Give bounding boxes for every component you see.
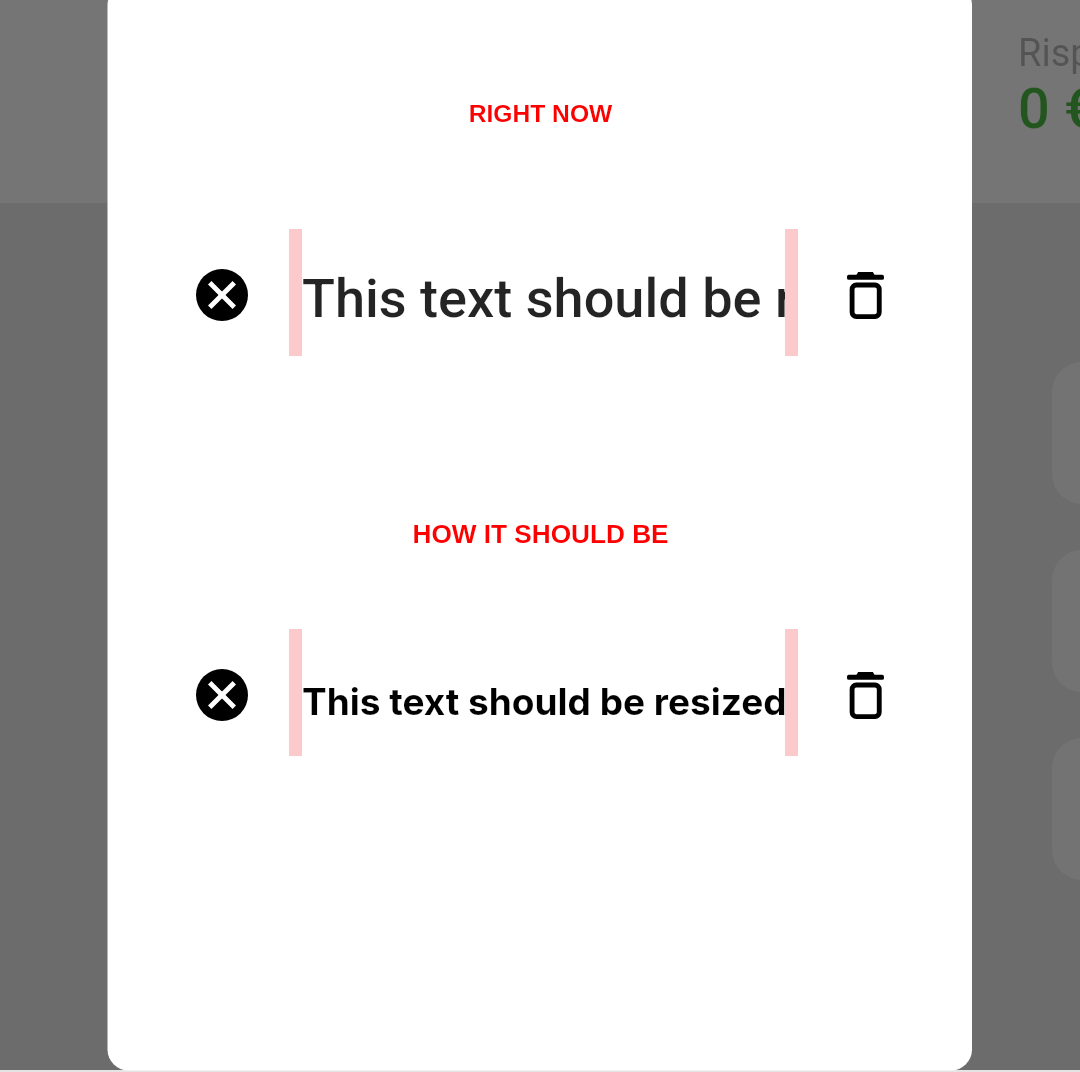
button[interactable]: Delete [847,272,884,319]
staticText: HOW IT SHOULD BE [108,519,973,548]
staticText: 0 € [1018,76,1080,142]
staticText: This text should be resized [302,267,785,330]
button[interactable]: Delete [847,672,884,719]
button[interactable]: Remove [196,269,248,321]
button[interactable]: Remove [196,669,248,721]
staticText: This text should be resized [302,679,785,724]
staticText: RIGHT NOW [108,100,973,127]
staticText: Risparmi [1018,31,1080,76]
